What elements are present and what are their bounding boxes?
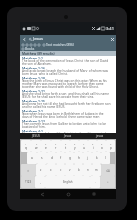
- staticText: baptized of him.: [22, 125, 46, 128]
- staticText: born Jesus, who is called Christ.: [22, 72, 68, 75]
- button[interactable]: Filter option: [25, 43, 29, 47]
- staticText: mother Mary was espoused to Joseph, befo…: [22, 82, 104, 85]
- staticText: t: [65, 146, 67, 150]
- staticText: 4: [55, 143, 57, 146]
- button[interactable]: Matthew 1:18: [20, 76, 116, 89]
- button[interactable]: f: [56, 152, 65, 164]
- button[interactable]: Filter option: [37, 43, 41, 47]
- staticText: .: [95, 180, 96, 184]
- staticText: English: [63, 180, 73, 184]
- button[interactable]: b: [74, 164, 83, 176]
- staticText: 7: [83, 143, 85, 146]
- staticText: Now when Jesus was born in Bethlehem of …: [22, 112, 104, 115]
- staticText: 1: [25, 143, 27, 146]
- button[interactable]: Shift: [21, 164, 36, 176]
- staticText: Matthew 1:25: [22, 99, 45, 102]
- button[interactable]: Matthew 4:1: [20, 129, 116, 133]
- staticText: r: [55, 146, 57, 150]
- button[interactable]: Clear search: [109, 36, 115, 42]
- staticText: Then cometh Jesus from Galilee to Jordan…: [22, 122, 107, 125]
- staticText: c: [60, 168, 62, 172]
- staticText: Now the birth of Jesus Christ was on thi…: [22, 79, 107, 82]
- button[interactable]: a: [27, 152, 37, 164]
- staticText: 6: [74, 143, 76, 146]
- button[interactable]: m: [92, 164, 101, 176]
- button[interactable]: j: [83, 152, 92, 164]
- button[interactable]: Recent apps: [90, 190, 98, 198]
- staticText: ⌫: [106, 169, 110, 172]
- button[interactable]: Matthew 1:16: [20, 66, 116, 76]
- button[interactable]: Books filter: [21, 47, 25, 51]
- button[interactable]: h: [74, 152, 83, 164]
- button[interactable]: c: [56, 164, 65, 176]
- button[interactable]: Matthew 1:1: [20, 56, 116, 66]
- button[interactable]: Matthew 1:25: [20, 99, 116, 109]
- button[interactable]: 7: [79, 140, 88, 152]
- staticText: f: [60, 156, 62, 160]
- button[interactable]: English: [45, 176, 90, 188]
- staticText: 0: [110, 143, 112, 146]
- button[interactable]: Matthew (89 results): [20, 51, 116, 56]
- staticText: o: [101, 146, 103, 150]
- button[interactable]: 8: [88, 140, 97, 152]
- button[interactable]: Jesus: [52, 133, 84, 139]
- staticText: 8: [92, 143, 94, 146]
- button[interactable]: 3: [41, 140, 51, 152]
- button[interactable]: 5: [61, 140, 70, 152]
- staticText: p: [110, 146, 112, 150]
- button[interactable]: x: [46, 164, 56, 176]
- button[interactable]: l: [101, 152, 110, 164]
- button[interactable]: Navigate up: [21, 36, 27, 42]
- button[interactable]: k: [92, 152, 101, 164]
- staticText: i: [93, 146, 94, 150]
- button[interactable]: s: [37, 152, 47, 164]
- staticText: Jesus: [64, 134, 72, 138]
- staticText: j: [87, 156, 88, 160]
- staticText: The book of the generation of Jesus Chri…: [22, 59, 110, 62]
- button[interactable]: 0: [106, 140, 115, 152]
- staticText: Matthew 1:18: [22, 76, 45, 79]
- staticText: the son of Abraham.: [22, 62, 52, 65]
- button[interactable]: Matthew 3:13: [20, 119, 116, 129]
- button[interactable]: Backspace: [101, 164, 115, 176]
- button[interactable]: Symbols: [21, 176, 35, 188]
- staticText: 5: [65, 143, 67, 146]
- button[interactable]: Matthew 1:21: [20, 89, 116, 99]
- button[interactable]: z: [36, 164, 46, 176]
- staticText: and he called his name JESUS.: [22, 105, 66, 108]
- button[interactable]: JESUS: [20, 133, 52, 139]
- staticText: Matthew 4:1: [22, 129, 43, 132]
- staticText: d: [51, 156, 53, 160]
- staticText: Text matches (896): [46, 43, 74, 47]
- button[interactable]: d: [47, 152, 56, 164]
- staticText: v: [69, 168, 71, 172]
- staticText: Jesus: [33, 36, 44, 42]
- button[interactable]: 1: [21, 140, 31, 152]
- staticText: w: [35, 146, 38, 150]
- button[interactable]: 2: [31, 140, 41, 152]
- button[interactable]: 4: [51, 140, 61, 152]
- staticText: days of Herod the king, behold, there ca…: [22, 115, 100, 118]
- button[interactable]: ,: [35, 176, 45, 188]
- staticText: Then was Jesus led up of the Spirit into…: [22, 132, 109, 133]
- staticText: 3:41: [106, 26, 114, 31]
- button[interactable]: Filter option: [29, 43, 33, 47]
- button[interactable]: n: [83, 164, 92, 176]
- button[interactable]: Matthew 2:1: [20, 109, 116, 119]
- button[interactable]: 6: [70, 140, 79, 152]
- staticText: Matthew 3:13: [22, 119, 45, 122]
- button[interactable]: Home: [64, 190, 72, 198]
- button[interactable]: 9: [97, 140, 106, 152]
- button[interactable]: g: [65, 152, 74, 164]
- staticText: l: [105, 156, 106, 160]
- staticText: And knew her not till she had brought fo…: [22, 102, 112, 105]
- button[interactable]: jesus: [84, 133, 116, 139]
- button[interactable]: v: [65, 164, 74, 176]
- staticText: Matthew 1:16: [22, 66, 45, 69]
- staticText: k: [96, 156, 98, 160]
- button[interactable]: Filter option: [21, 43, 25, 47]
- button[interactable]: Filter option: [33, 43, 37, 47]
- button[interactable]: Back: [38, 190, 46, 198]
